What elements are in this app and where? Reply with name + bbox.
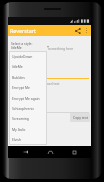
button[interactable]: Recents [66, 146, 82, 158]
staticText: Copy text [73, 115, 88, 120]
button[interactable]: More options [83, 27, 90, 34]
button[interactable]: litleMe [9, 44, 89, 50]
button[interactable]: Encrypt Me [9, 82, 47, 92]
staticText: litleMe [11, 45, 22, 50]
button[interactable]: Screaming [9, 113, 47, 123]
staticText: Bubbles [12, 75, 25, 80]
staticText: Reversed text [38, 81, 60, 86]
button[interactable]: Home [42, 146, 58, 158]
button[interactable]: My Italic [9, 124, 47, 134]
staticText: Elvish [12, 137, 22, 142]
staticText: Select a style: [11, 41, 33, 46]
staticText: My Italic [12, 127, 26, 132]
button[interactable]: Share [72, 25, 83, 36]
staticText: Screaming [12, 116, 29, 121]
button[interactable]: Schizophrenic [9, 103, 47, 113]
button[interactable]: litleMe [9, 61, 47, 71]
staticText: litleMe [12, 64, 23, 69]
staticText: UpsideDown [12, 54, 33, 59]
staticText: Encrypt Me again [12, 96, 40, 101]
button[interactable]: Elvish [9, 134, 47, 144]
staticText: Reverstart [10, 27, 37, 34]
button[interactable]: Back [17, 146, 33, 158]
staticText: something here [48, 46, 74, 51]
button[interactable]: Copy text [70, 113, 90, 122]
button[interactable]: Bubbles [9, 72, 47, 82]
button[interactable]: Encrypt Me again [9, 93, 47, 103]
button[interactable]: UpsideDown [9, 51, 47, 61]
staticText: Schizophrenic [12, 106, 35, 111]
staticText: Encrypt Me [12, 85, 30, 90]
